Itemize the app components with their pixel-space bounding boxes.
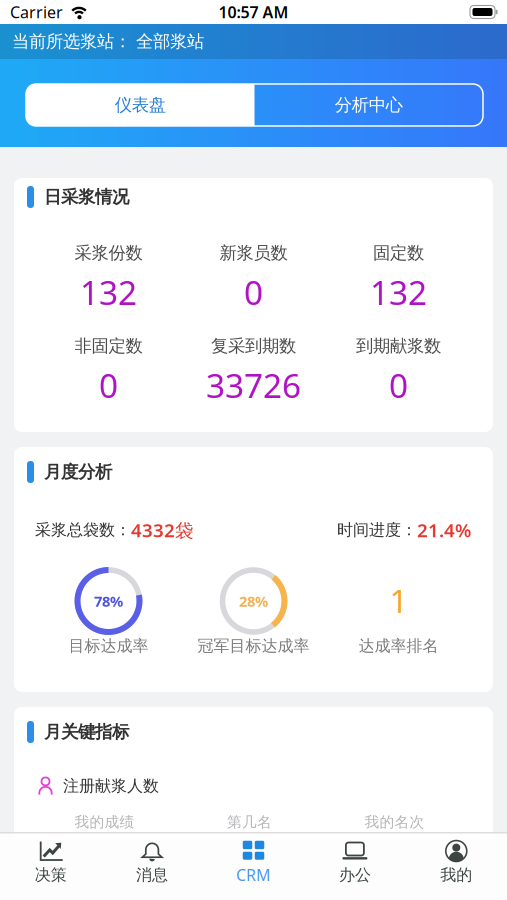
staticText: 月关键指标	[44, 721, 129, 743]
staticText: 时间进度：	[337, 520, 417, 540]
staticText: 目标达成率	[68, 636, 148, 656]
staticText: 注册献浆人数	[63, 776, 159, 796]
staticText: 冠军目标达成率	[197, 636, 309, 656]
staticText: 采浆份数	[74, 242, 142, 264]
staticText: 33726	[206, 363, 301, 407]
staticText: CRM	[236, 864, 271, 885]
staticText: 我的成绩	[74, 813, 134, 831]
staticText: 非固定数	[74, 335, 142, 357]
button[interactable]: 我的	[406, 834, 507, 899]
staticText: 132	[80, 270, 137, 314]
staticText: 78%	[94, 591, 123, 611]
staticText: 0	[99, 363, 118, 407]
staticText: 月度分析	[44, 461, 112, 483]
button[interactable]: 分析中心	[254, 84, 483, 126]
staticText: 消息	[136, 865, 168, 885]
staticText: 分析中心	[335, 94, 403, 116]
button[interactable]: CRM	[203, 833, 304, 899]
staticText: 复采到期数	[211, 335, 296, 357]
staticText: 4332袋	[131, 518, 194, 542]
button[interactable]: 办公	[304, 834, 406, 899]
staticText: Carrier	[10, 1, 63, 23]
staticText: 21.4%	[417, 518, 471, 542]
staticText: 固定数	[373, 242, 424, 264]
staticText: 第几名	[227, 813, 272, 831]
staticText: 当前所选浆站： 全部浆站	[12, 31, 204, 52]
staticText: 决策	[35, 865, 67, 885]
staticText: 132	[370, 270, 427, 314]
staticText: 日采浆情况	[44, 186, 129, 208]
staticText: 0	[244, 270, 263, 314]
button[interactable]: 决策	[0, 834, 101, 899]
staticText: 新浆员数	[219, 242, 287, 264]
staticText: 办公	[339, 865, 371, 885]
button[interactable]: 消息	[101, 834, 203, 899]
staticText: 仪表盘	[115, 94, 166, 116]
staticText: 到期献浆数	[356, 335, 441, 357]
staticText: 采浆总袋数：	[35, 520, 131, 540]
staticText: 我的	[440, 865, 472, 885]
button[interactable]: 仪表盘	[26, 84, 254, 126]
staticText: 1	[389, 580, 407, 622]
staticText: 0	[389, 363, 408, 407]
staticText: 我的名次	[364, 813, 424, 831]
staticText: 10:57 AM	[218, 1, 288, 23]
staticText: 28%	[239, 591, 268, 611]
staticText: 达成率排名	[358, 636, 438, 656]
